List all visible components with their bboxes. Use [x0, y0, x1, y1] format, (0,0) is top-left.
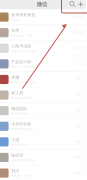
staticText: [图片] [11, 18, 19, 22]
staticText: 在吗?有个事情想问 [11, 81, 36, 84]
staticText: 刘洋 [11, 169, 19, 173]
button[interactable]: 王强 [0, 134, 85, 150]
button[interactable]: Add [77, 0, 85, 9]
staticText: 微信 [37, 1, 47, 7]
staticText: 帮我看一下这个 [11, 174, 32, 178]
staticText: 星期一 [75, 109, 84, 112]
button[interactable]: 张伟 [0, 25, 85, 41]
button[interactable]: 家人群 [0, 87, 85, 103]
staticText: 老李家常菜馆 [11, 12, 35, 17]
button[interactable]: 老李家常菜馆 [0, 9, 85, 25]
staticText: 周末聚会地点定了 [11, 127, 35, 131]
staticText: 微信团队 [11, 106, 27, 111]
staticText: 家人群 [11, 91, 23, 95]
staticText: 张伟 [11, 28, 19, 33]
staticText: 明天上午十点开会 [11, 65, 35, 68]
staticText: 星期一 [75, 125, 84, 128]
staticText: 订阅号消息 [11, 44, 31, 48]
staticText: 上午10:24 [69, 15, 84, 19]
button[interactable]: 刘洋 [0, 165, 85, 180]
staticText: 星期五 [75, 171, 84, 175]
staticText: 帐号安全提示 [11, 112, 29, 115]
button[interactable]: 李娜 [0, 72, 85, 87]
button[interactable]: 订阅号消息 [0, 41, 85, 56]
staticText: 大学同学群 [11, 122, 31, 127]
staticText: 昨天 [78, 93, 84, 97]
staticText: 人民日报:今日头条 [11, 49, 36, 53]
staticText: 昨天 [78, 78, 84, 81]
staticText: 星期日 [75, 140, 84, 143]
staticText: 晚上回来吃饭吗 [11, 96, 32, 100]
staticText: 产品设计群 [11, 59, 31, 64]
button[interactable]: 产品设计群 [0, 56, 85, 72]
staticText: 上午9:58 [71, 31, 84, 34]
button[interactable]: 微信团队 [0, 103, 85, 119]
staticText: 王强 [11, 137, 19, 142]
staticText: 我已经在路上了 [11, 143, 32, 146]
button[interactable]: Search [69, 0, 77, 9]
staticText: 李娜 [11, 75, 19, 80]
staticText: 昨天 [78, 62, 84, 65]
staticText: 上午9:12 [71, 46, 84, 50]
button[interactable]: 陈经理 [0, 150, 85, 165]
button[interactable]: 大学同学群 [0, 119, 85, 134]
staticText: 陈经理 [11, 153, 23, 158]
staticText: 好的,收到了谢谢 [11, 34, 33, 37]
staticText: 合同文件已经发你 [11, 159, 35, 162]
